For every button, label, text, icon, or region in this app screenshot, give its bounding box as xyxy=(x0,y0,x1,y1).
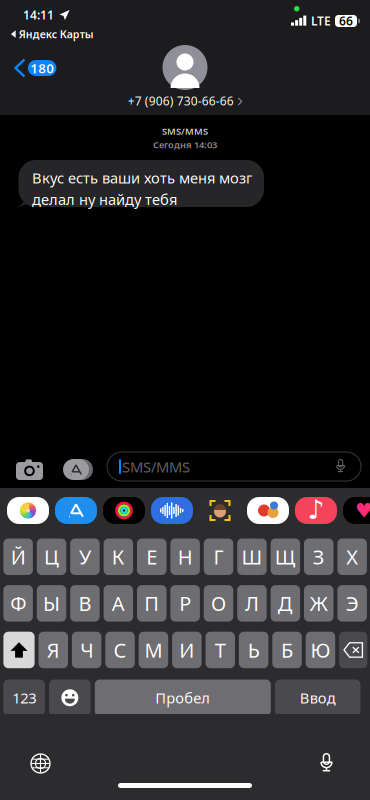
staticText: Д xyxy=(278,590,293,617)
staticText: Ж xyxy=(310,590,328,617)
button[interactable]: Contact photo xyxy=(162,45,207,90)
button[interactable]: Ю xyxy=(306,632,335,668)
button[interactable]: Music xyxy=(295,497,337,524)
button[interactable]: У xyxy=(70,538,100,575)
button[interactable]: Д xyxy=(271,585,300,622)
staticText: Ы xyxy=(43,590,60,617)
staticText: Ь xyxy=(248,637,260,663)
button[interactable]: С xyxy=(105,632,135,668)
button[interactable]: Яндекс Карты xyxy=(9,26,96,42)
button[interactable]: Ы xyxy=(37,585,66,622)
staticText: Г xyxy=(214,543,224,570)
button[interactable]: Пробел xyxy=(95,679,271,716)
staticText: З xyxy=(313,543,325,570)
button[interactable]: Apps xyxy=(58,454,98,485)
button[interactable]: А xyxy=(104,585,133,622)
staticText: П xyxy=(144,590,159,617)
staticText: К xyxy=(112,543,125,570)
staticText: делал ну найду тебя xyxy=(32,189,177,209)
staticText: Ввод xyxy=(300,688,336,707)
button[interactable]: И xyxy=(172,632,202,668)
button[interactable]: М xyxy=(139,632,168,668)
staticText: А xyxy=(112,590,125,617)
button[interactable]: П xyxy=(137,585,166,622)
button[interactable]: Ч xyxy=(72,632,101,668)
button[interactable]: З xyxy=(304,538,333,575)
button[interactable]: В xyxy=(70,585,100,622)
button[interactable]: Л xyxy=(237,585,267,622)
staticText: Н xyxy=(178,543,193,570)
button[interactable]: Х xyxy=(337,538,367,575)
staticText: В xyxy=(78,590,91,617)
staticText: Б xyxy=(281,637,293,663)
button[interactable]: Э xyxy=(337,585,367,622)
button[interactable]: Щ xyxy=(271,538,300,575)
staticText: М xyxy=(144,637,162,663)
staticText: ♪ xyxy=(307,494,324,525)
staticText: Ч xyxy=(80,637,93,663)
staticText: Щ xyxy=(275,543,296,570)
button[interactable]: Fitness xyxy=(103,497,145,524)
button[interactable]: Г xyxy=(204,538,233,575)
button[interactable]: Camera xyxy=(11,454,48,485)
staticText: 123 xyxy=(12,688,36,707)
button[interactable]: Й xyxy=(3,538,33,575)
staticText: SMS/MMS xyxy=(162,125,208,137)
button[interactable]: Ш xyxy=(237,538,267,575)
staticText: Пробел xyxy=(155,688,210,707)
staticText: Т xyxy=(215,637,226,663)
button[interactable]: More apps xyxy=(343,497,370,524)
staticText: Вкус есть ваши хоть меня мозг xyxy=(32,168,252,187)
button[interactable]: Р xyxy=(170,585,200,622)
staticText: SMS/MMS xyxy=(122,457,190,476)
staticText: +7 (906) 730-66-66 xyxy=(128,93,234,109)
button[interactable]: Е xyxy=(137,538,166,575)
staticText: У xyxy=(79,543,91,570)
button[interactable]: 180 xyxy=(7,53,64,83)
staticText: И xyxy=(179,637,194,663)
button[interactable]: Delete xyxy=(339,632,367,668)
button[interactable]: +7 (906) 730-66-66 xyxy=(126,93,244,109)
staticText: Х xyxy=(346,543,358,570)
button[interactable]: Я xyxy=(38,632,68,668)
staticText: Ц xyxy=(44,543,59,570)
button[interactable]: Ь xyxy=(239,632,268,668)
staticText: Я xyxy=(47,637,60,663)
button[interactable]: Ф xyxy=(3,585,33,622)
button[interactable]: Shift xyxy=(3,632,35,668)
staticText: Яндекс Карты xyxy=(19,27,94,41)
staticText: Ю xyxy=(310,637,330,663)
button[interactable]: Т xyxy=(205,632,235,668)
button[interactable]: Memoji xyxy=(199,497,241,524)
staticText: 180 xyxy=(30,59,54,77)
button[interactable]: К xyxy=(104,538,133,575)
staticText: LTE xyxy=(311,13,331,29)
staticText: Р xyxy=(179,590,191,617)
staticText: С xyxy=(114,637,127,663)
button[interactable]: Photos xyxy=(7,497,49,524)
staticText: ♥ xyxy=(355,499,370,522)
button[interactable]: Ввод xyxy=(275,679,360,716)
staticText: Сегодня 14:03 xyxy=(153,138,217,151)
staticText: 14:11 xyxy=(23,7,54,23)
button[interactable]: Stickers xyxy=(247,497,289,524)
button[interactable]: App Store xyxy=(55,497,97,524)
button[interactable]: Б xyxy=(272,632,302,668)
staticText: Ф xyxy=(10,590,26,617)
button[interactable]: Emoji xyxy=(49,679,91,716)
button[interactable]: Dictate xyxy=(311,744,342,781)
button[interactable]: Ц xyxy=(37,538,66,575)
staticText: Л xyxy=(245,590,259,617)
button[interactable]: Ж xyxy=(304,585,333,622)
button[interactable]: 123 xyxy=(3,679,45,716)
staticText: Ш xyxy=(241,543,262,570)
button[interactable]: SMS/MMS xyxy=(107,452,361,481)
staticText: Й xyxy=(11,543,26,570)
button[interactable]: Change keyboard xyxy=(22,745,59,782)
button[interactable]: Н xyxy=(170,538,200,575)
button[interactable]: О xyxy=(204,585,233,622)
button[interactable]: Voice memo xyxy=(151,497,193,524)
staticText: Е xyxy=(146,543,157,570)
staticText: О xyxy=(211,590,226,617)
staticText: 66 xyxy=(339,13,353,29)
